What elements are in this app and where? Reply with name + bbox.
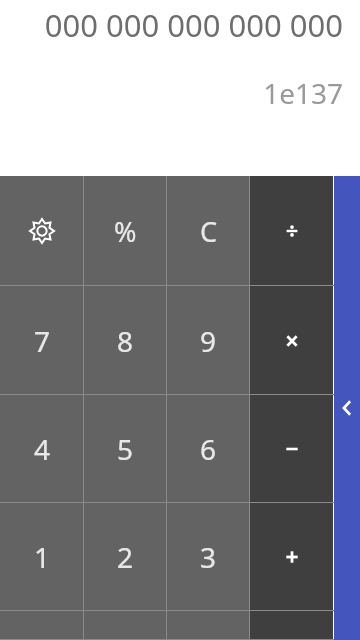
button[interactable]: 8 [84,286,167,395]
button[interactable]: Divide [250,176,333,286]
button[interactable]: C [167,176,250,286]
button[interactable]: Expand panel [334,176,360,640]
button[interactable] [84,611,167,640]
button[interactable]: Settings [0,176,84,286]
button[interactable]: 4 [0,395,84,503]
button[interactable]: 6 [167,395,250,503]
button[interactable]: % [84,176,167,286]
button[interactable]: 5 [84,395,167,503]
button[interactable] [0,611,84,640]
staticText: 9 [200,322,217,360]
staticText: 1 [34,538,51,576]
button[interactable] [250,611,333,640]
button[interactable]: 1 [0,503,84,611]
staticText: 8 [117,322,134,360]
staticText: 000 000 000 000 000 [16,4,343,46]
staticText: 7 [34,322,51,360]
staticText: C [200,213,218,250]
button[interactable]: 3 [167,503,250,611]
staticText: 3 [200,538,217,576]
staticText: 1e137 [0,74,343,112]
button[interactable]: Multiply [250,286,333,395]
button[interactable] [167,611,250,640]
button[interactable]: 2 [84,503,167,611]
button[interactable]: 9 [167,286,250,395]
staticText: 5 [117,430,134,468]
staticText: 4 [34,430,51,468]
button[interactable]: Subtract [250,395,333,503]
button[interactable]: Add [250,503,333,611]
staticText: 6 [200,430,217,468]
staticText: % [114,213,137,250]
staticText: 2 [117,538,134,576]
button[interactable]: 7 [0,286,84,395]
